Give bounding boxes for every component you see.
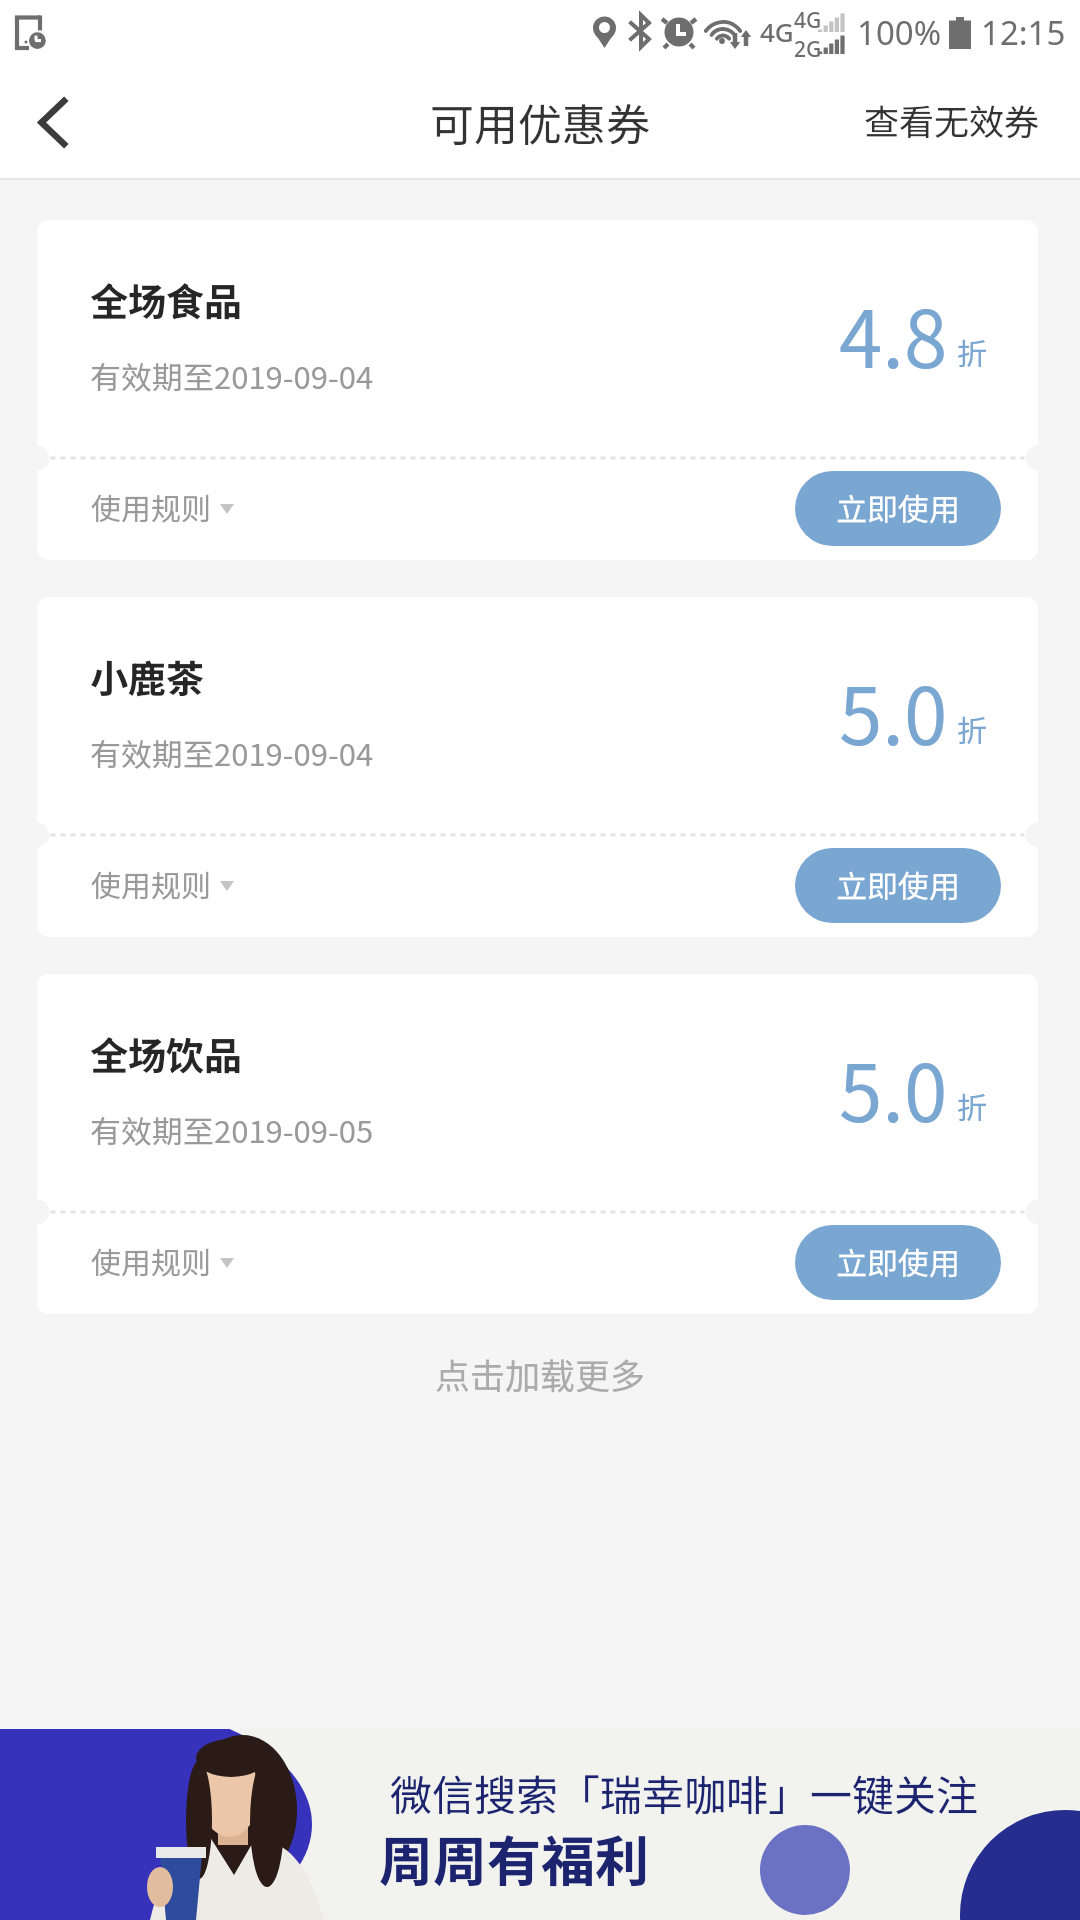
button[interactable]: 立即使用 [795,471,1001,546]
staticText: 5.0 [839,655,948,768]
staticText: 立即使用 [836,1239,960,1284]
staticText: 折 [957,330,987,373]
staticText: 使用规则 [91,862,211,905]
button[interactable]: 使用规则 [91,1211,234,1314]
button[interactable]: 立即使用 [795,1225,1001,1300]
staticText: 4G [794,6,822,35]
button[interactable]: 立即使用 [795,848,1001,923]
button[interactable]: Back [0,73,104,177]
staticText: 立即使用 [836,485,960,530]
staticText: 折 [957,1084,987,1127]
staticText: 使用规则 [91,1239,211,1282]
staticText: 有效期至2019-09-05 [90,1107,374,1152]
staticText: 查看无效券 [864,94,1040,145]
staticText: 2G [794,35,822,64]
staticText: 立即使用 [836,862,960,907]
button[interactable]: 点击加载更多 [0,1314,1080,1424]
button[interactable]: 全场食品 [37,220,1038,560]
button[interactable]: 使用规则 [91,834,234,937]
staticText: 周周有福利 [379,1818,649,1896]
staticText: 使用规则 [91,485,211,528]
staticText: 可用优惠券 [430,90,650,154]
staticText: 4.8 [839,278,948,391]
staticText: 全场饮品 [90,1026,243,1081]
staticText: 点击加载更多 [435,1348,646,1399]
staticText: 有效期至2019-09-04 [90,353,374,398]
staticText: 有效期至2019-09-04 [90,730,374,775]
staticText: 微信搜索「瑞幸咖啡」一键关注 [390,1762,979,1823]
staticText: 5.0 [839,1032,948,1145]
button[interactable]: 全场饮品 [37,974,1038,1314]
staticText: 小鹿茶 [90,649,205,704]
staticText: 12:15 [981,10,1066,55]
staticText: 折 [957,707,987,750]
staticText: 4G [760,14,794,49]
button[interactable]: 查看无效券 [864,100,1040,151]
staticText: 100% [857,10,942,55]
button[interactable]: 使用规则 [91,457,234,560]
staticText: 全场食品 [90,272,243,327]
button[interactable]: 微信搜索「瑞幸咖啡」一键关注 [0,1729,1080,1920]
button[interactable]: 小鹿茶 [37,597,1038,937]
